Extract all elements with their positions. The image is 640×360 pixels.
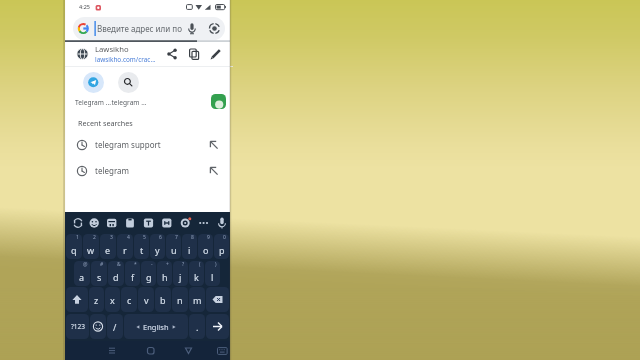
staticText: 6	[159, 234, 162, 241]
staticText: lawsikho.com/crac...	[95, 55, 156, 64]
staticText: (	[199, 261, 201, 268]
staticText: x	[110, 294, 115, 306]
staticText: 7	[175, 234, 178, 241]
staticText: /	[113, 321, 117, 333]
staticText: 1	[76, 234, 79, 241]
button[interactable]	[142, 342, 158, 358]
staticText: e	[105, 244, 111, 256]
staticText: g	[146, 271, 152, 283]
button[interactable]: p	[214, 234, 229, 259]
button[interactable]: r	[117, 234, 133, 259]
staticText: @	[83, 261, 88, 268]
staticText: )	[215, 261, 217, 268]
button[interactable]	[206, 287, 229, 312]
button[interactable]	[206, 314, 229, 339]
staticText: telegram support	[95, 139, 161, 150]
button[interactable]: i	[182, 234, 197, 259]
staticText: 8	[191, 234, 194, 241]
button[interactable]: x	[105, 287, 120, 312]
button[interactable]: g	[141, 261, 156, 286]
button[interactable]: u	[166, 234, 181, 259]
staticText: ?123	[71, 322, 85, 331]
button[interactable]: o	[198, 234, 213, 259]
staticText: f	[131, 271, 135, 283]
button[interactable]	[211, 94, 226, 109]
button[interactable]: n	[172, 287, 188, 312]
button[interactable]	[118, 72, 139, 93]
staticText: 0	[223, 234, 226, 241]
button[interactable]: /	[107, 314, 123, 339]
staticText: a	[79, 271, 85, 283]
staticText: l	[211, 271, 214, 283]
staticText: +	[166, 261, 169, 268]
button[interactable]: telegram support	[65, 134, 230, 156]
staticText: Telegram ...	[75, 98, 111, 107]
staticText: p	[219, 244, 225, 256]
button[interactable]	[90, 314, 106, 339]
button[interactable]: ?123	[66, 314, 89, 339]
staticText: h	[162, 271, 168, 283]
button[interactable]	[66, 287, 88, 312]
staticText: ?	[182, 261, 185, 268]
staticText: Введите адрес или по	[97, 23, 185, 34]
button[interactable]: h	[157, 261, 172, 286]
staticText: i	[188, 244, 191, 256]
staticText: &	[117, 261, 121, 268]
staticText: m	[193, 294, 202, 306]
staticText: telegram	[95, 165, 130, 176]
staticText: 9	[207, 234, 210, 241]
button[interactable]: d	[108, 261, 124, 286]
staticText: 3	[110, 234, 113, 241]
button[interactable]: j	[173, 261, 188, 286]
button[interactable]: English	[124, 314, 188, 339]
button[interactable]	[180, 342, 196, 358]
button[interactable]: .	[189, 314, 205, 339]
button[interactable]: c	[121, 287, 137, 312]
staticText: Recent searches	[78, 118, 133, 128]
staticText: .	[196, 321, 199, 333]
button[interactable]: y	[150, 234, 165, 259]
button[interactable]: v	[138, 287, 154, 312]
button[interactable]: Lawsikho	[65, 42, 230, 67]
staticText: o	[203, 244, 209, 256]
staticText: 5	[143, 234, 146, 241]
button[interactable]: t	[134, 234, 149, 259]
staticText: w	[87, 244, 95, 256]
staticText: b	[160, 294, 166, 306]
button[interactable]: k	[189, 261, 204, 286]
staticText: y	[155, 244, 160, 256]
button[interactable]: telegram	[65, 160, 230, 182]
staticText: d	[113, 271, 119, 283]
button[interactable]: a	[74, 261, 90, 286]
button[interactable]: l	[205, 261, 220, 286]
staticText: k	[194, 271, 199, 283]
staticText: English	[143, 322, 169, 332]
staticText: *	[134, 261, 137, 268]
button[interactable]: f	[125, 261, 140, 286]
staticText: z	[94, 294, 99, 306]
button[interactable]	[83, 72, 104, 93]
button[interactable]: b	[155, 287, 171, 312]
staticText: q	[71, 244, 77, 256]
button[interactable]: q	[66, 234, 82, 259]
staticText: v	[144, 294, 149, 306]
staticText: t	[140, 244, 144, 256]
button[interactable]: e	[100, 234, 116, 259]
staticText: c	[127, 294, 132, 306]
staticText: Lawsikho	[95, 44, 129, 54]
button[interactable]: Введите адрес или по	[73, 17, 225, 40]
staticText: 4:25	[79, 3, 90, 10]
staticText: s	[97, 271, 102, 283]
button[interactable]: w	[83, 234, 99, 259]
staticText: 4	[127, 234, 130, 241]
staticText: u	[171, 244, 177, 256]
staticText: telegram ...	[111, 98, 147, 107]
button[interactable]: z	[89, 287, 104, 312]
button[interactable]: s	[91, 261, 107, 286]
staticText: -	[151, 261, 153, 268]
button[interactable]: m	[189, 287, 205, 312]
staticText: 2	[93, 234, 96, 241]
button[interactable]	[104, 342, 120, 358]
staticText: j	[179, 271, 182, 283]
staticText: n	[177, 294, 183, 306]
